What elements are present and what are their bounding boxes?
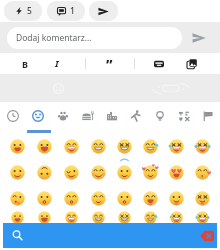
button[interactable]: Emoji [189, 133, 215, 159]
button[interactable]: Animals [50, 102, 75, 129]
button[interactable]: Format [98, 53, 120, 74]
button[interactable]: Emoji [111, 133, 137, 159]
button[interactable]: Emoji [85, 211, 111, 224]
button[interactable]: Emoji [58, 185, 85, 211]
button[interactable]: Objects [148, 102, 172, 129]
button[interactable]: Emoji [163, 133, 189, 159]
staticText: I [55, 57, 59, 70]
button[interactable]: Emoji [58, 211, 85, 224]
button[interactable]: Emoji [85, 159, 111, 185]
staticText: 5 [27, 5, 32, 17]
button[interactable]: Emoji [58, 133, 85, 159]
button[interactable]: Emoji [31, 159, 58, 185]
button[interactable]: Emoji [137, 159, 163, 185]
staticText: B [22, 58, 28, 70]
staticText: ” [106, 55, 113, 73]
button[interactable]: Emoji [163, 185, 189, 211]
button[interactable]: Activities [124, 102, 148, 129]
button[interactable]: Emoji [137, 211, 163, 224]
button[interactable]: Emoji [31, 133, 58, 159]
button[interactable]: Dodaj komentarz... [7, 27, 182, 49]
button[interactable]: Emoji [85, 185, 111, 211]
button[interactable]: Emoji [111, 185, 137, 211]
button[interactable]: Emoji [4, 133, 31, 159]
button[interactable]: Smileys [25, 102, 50, 129]
button[interactable]: 1 [47, 1, 85, 21]
button[interactable]: Search [7, 223, 27, 248]
button[interactable]: Symbols [172, 102, 196, 129]
staticText: Dodaj komentarz... [16, 32, 92, 44]
button[interactable]: Travel [100, 102, 124, 129]
button[interactable]: Emoji [137, 185, 163, 211]
button[interactable]: Emoji [189, 211, 215, 224]
button[interactable]: Emoji [31, 211, 58, 224]
button[interactable]: Emoji [4, 185, 31, 211]
button[interactable]: Format [181, 53, 203, 74]
button[interactable]: Emoji [111, 159, 137, 185]
button[interactable]: Food [75, 102, 100, 129]
button[interactable]: Format [14, 53, 36, 74]
button[interactable]: Emoji [163, 159, 189, 185]
button[interactable]: Emoji [31, 185, 58, 211]
button[interactable]: Emoji [163, 211, 189, 224]
button[interactable]: Format [148, 53, 170, 74]
button[interactable]: Emoji [189, 185, 215, 211]
button[interactable]: Emoji [4, 211, 31, 224]
button[interactable]: Flags [196, 102, 220, 129]
button[interactable]: Emoji [85, 133, 111, 159]
button[interactable]: Emoji [111, 211, 137, 224]
button[interactable]: Emoji [58, 159, 85, 185]
button[interactable]: Emoji [137, 133, 163, 159]
button[interactable]: Backspace [200, 230, 214, 242]
button[interactable]: Recent [0, 102, 25, 129]
button[interactable]: 5 [4, 1, 42, 21]
button[interactable]: Format [46, 53, 68, 74]
button[interactable]: Send comment [184, 22, 214, 53]
button[interactable]: Emoji [189, 159, 215, 185]
staticText: 1 [70, 5, 75, 17]
button[interactable]: Send [89, 1, 118, 21]
button[interactable]: Emoji [4, 159, 31, 185]
